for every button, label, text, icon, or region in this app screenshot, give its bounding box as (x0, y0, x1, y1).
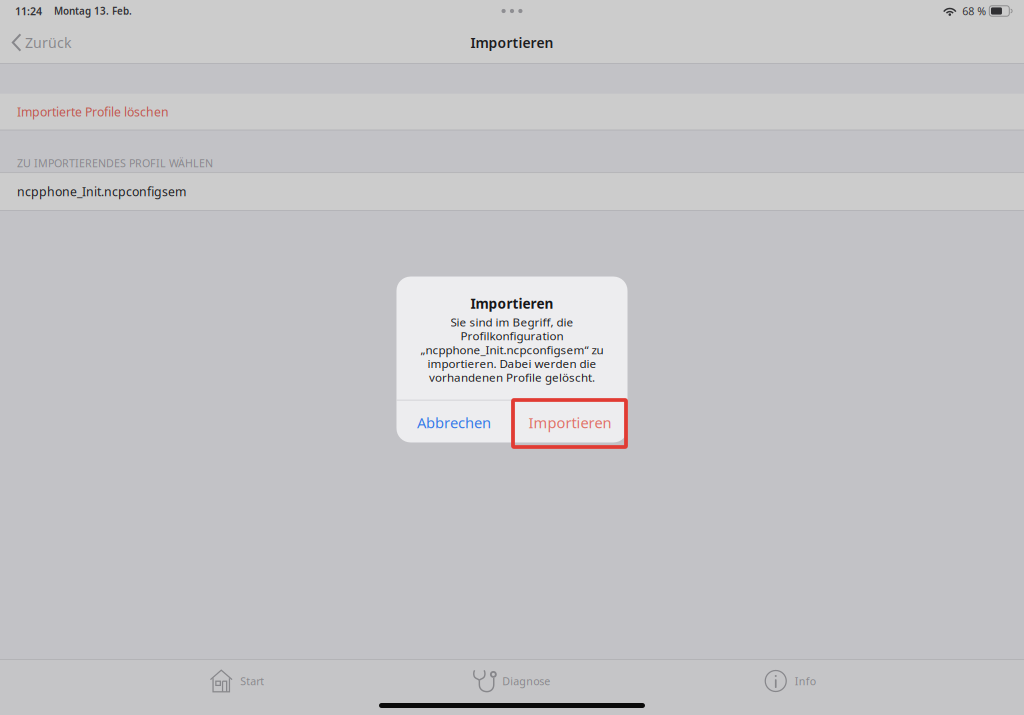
staticText: vorhandenen Profile gelöscht. (429, 369, 595, 385)
staticText: importieren. Dabei werden die (427, 356, 596, 371)
staticText: Importierte Profile löschen (17, 103, 169, 120)
staticText: 11:24 (15, 4, 42, 18)
button[interactable]: Importierte Profile löschen (0, 94, 1024, 130)
staticText: ZU IMPORTIERENDES PROFIL WÄHLEN (17, 156, 213, 170)
button[interactable]: Info (690, 663, 890, 699)
button[interactable]: Zurück (0, 22, 84, 63)
button[interactable]: Diagnose (412, 663, 612, 699)
staticText: Montag 13. Feb. (54, 4, 132, 18)
staticText: Importieren (528, 412, 611, 432)
staticText: Zurück (25, 33, 72, 52)
staticText: Sie sind im Begriff, die (450, 314, 573, 330)
staticText: Abbrechen (417, 412, 491, 432)
button[interactable]: Importieren (512, 400, 628, 442)
staticText: Start (240, 674, 264, 688)
staticText: „ncpphone_Init.ncpconfigsem“ zu (420, 342, 603, 358)
button[interactable]: Multitasking-Steuerung (490, 0, 534, 22)
staticText: 68 % (962, 4, 986, 18)
staticText: Diagnose (502, 674, 550, 688)
staticText: Info (795, 674, 816, 688)
button[interactable]: ncpphone_Init.ncpconfigsem (0, 173, 1024, 210)
button[interactable]: Abbrechen (396, 400, 512, 442)
staticText: Importieren (470, 294, 553, 313)
button[interactable]: Start (137, 663, 337, 699)
staticText: Importieren (470, 33, 553, 52)
staticText: Profilkonfiguration (460, 328, 563, 344)
staticText: ncpphone_Init.ncpconfigsem (17, 183, 186, 200)
